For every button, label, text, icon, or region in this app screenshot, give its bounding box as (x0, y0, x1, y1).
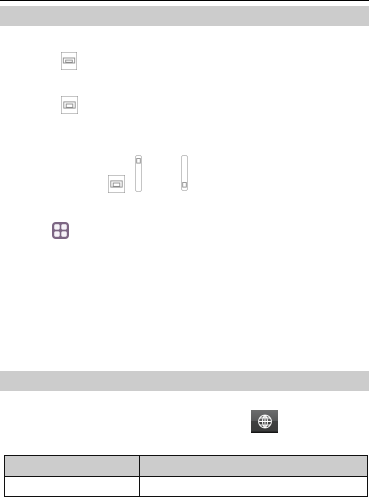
image: Image (108, 175, 125, 193)
image: Grid (52, 222, 69, 239)
image: Image (61, 52, 77, 70)
image: Image (181, 155, 188, 191)
image: Image (135, 155, 142, 192)
button[interactable]: Globe (251, 410, 278, 433)
image: Image (61, 96, 78, 114)
